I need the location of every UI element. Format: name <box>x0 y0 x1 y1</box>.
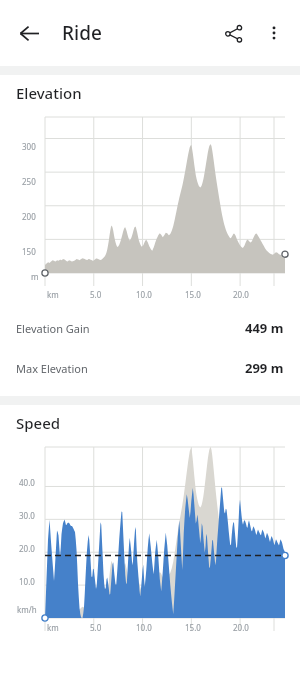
button[interactable]: More options <box>254 13 294 53</box>
staticText: Elevation Gain <box>16 321 90 336</box>
staticText: 20.0 <box>233 622 249 633</box>
staticText: 10.0 <box>136 289 152 300</box>
staticText: 200 <box>22 211 36 222</box>
staticText: 250 <box>22 176 36 187</box>
staticText: 300 <box>22 141 36 152</box>
staticText: 15.0 <box>185 622 201 633</box>
button[interactable]: Max Elevation <box>0 348 300 388</box>
staticText: 5.0 <box>90 622 102 633</box>
staticText: km/h <box>17 604 37 615</box>
staticText: 15.0 <box>185 289 201 300</box>
staticText: 299 m <box>245 359 284 377</box>
staticText: 10.0 <box>19 576 35 587</box>
staticText: km <box>47 289 59 300</box>
staticText: 20.0 <box>19 543 35 554</box>
staticText: 150 <box>22 246 36 257</box>
staticText: 449 m <box>245 319 284 337</box>
button[interactable]: Elevation Gain <box>0 308 300 348</box>
staticText: m <box>31 271 39 282</box>
button[interactable]: Back <box>8 12 50 54</box>
button[interactable]: Share <box>212 12 254 54</box>
staticText: Elevation <box>16 83 82 103</box>
staticText: 40.0 <box>19 477 35 488</box>
staticText: km <box>47 622 59 633</box>
staticText: 10.0 <box>136 622 152 633</box>
staticText: Speed <box>16 413 61 433</box>
staticText: Ride <box>62 20 102 46</box>
staticText: 20.0 <box>233 289 249 300</box>
staticText: 30.0 <box>19 510 35 521</box>
staticText: 5.0 <box>90 289 102 300</box>
staticText: Max Elevation <box>16 361 88 376</box>
